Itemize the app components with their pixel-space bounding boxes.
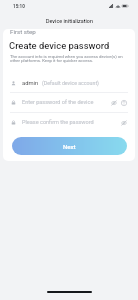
staticText: Enter password of the device [22, 99, 94, 106]
staticText: (Default device account) [42, 80, 99, 86]
button[interactable]: Show password [109, 98, 118, 107]
staticText: Please confirm the password [22, 119, 94, 126]
staticText: 15:10 [13, 4, 25, 9]
button[interactable]: admin [10, 73, 128, 93]
staticText: Create device password [9, 40, 110, 51]
button[interactable]: Enter password of the device [10, 92, 128, 112]
button[interactable]: Show password [119, 118, 128, 127]
staticText: First step [10, 29, 36, 35]
staticText: Next [63, 143, 76, 150]
button[interactable]: Next [12, 137, 127, 155]
staticText: The account info is required when you ac… [10, 54, 129, 63]
button[interactable]: Please confirm the password [10, 112, 128, 132]
staticText: Device initialization [46, 18, 93, 24]
staticText: admin [22, 80, 39, 87]
button[interactable]: Password rules [119, 98, 128, 107]
